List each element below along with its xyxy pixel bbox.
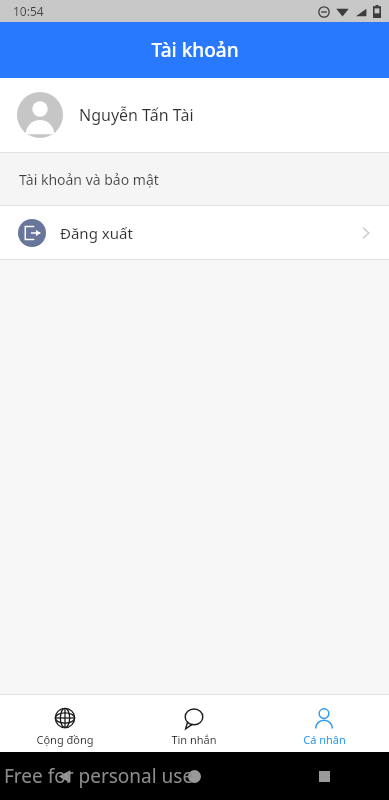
staticText: Cộng đồng	[36, 732, 94, 747]
staticText: 10:54	[13, 3, 44, 19]
button[interactable]: Nguyễn Tấn Tài	[0, 78, 389, 152]
staticText: Cá nhân	[303, 732, 346, 747]
button[interactable]: Cộng đồng	[0, 701, 129, 747]
other: Home	[188, 770, 201, 783]
button[interactable]: Cá nhân	[259, 701, 389, 747]
other: Back	[58, 770, 71, 783]
staticText: Tin nhắn	[171, 732, 217, 747]
button[interactable]: Đăng xuất	[0, 206, 389, 259]
staticText: Free for personal use	[4, 763, 194, 789]
staticText: Đăng xuất	[60, 223, 133, 243]
staticText: Tài khoản	[151, 37, 239, 63]
staticText: Tài khoản và bảo mật	[19, 170, 159, 189]
button[interactable]: Tin nhắn	[129, 701, 259, 747]
staticText: Nguyễn Tấn Tài	[79, 104, 194, 126]
